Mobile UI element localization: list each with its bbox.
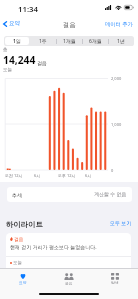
staticText: 오전 12시 — [5, 173, 23, 178]
staticText: 6개월 — [89, 38, 102, 45]
staticText: 6시 — [34, 173, 41, 178]
staticText: 걸음 — [14, 236, 24, 242]
staticText: 걸음 — [63, 21, 76, 29]
staticText: 요약 — [19, 280, 27, 285]
staticText: 오늘 — [13, 260, 22, 266]
staticText: 6시 — [85, 173, 92, 178]
button[interactable]: 요약 — [0, 269, 46, 291]
staticText: 데이터 추가 — [105, 20, 133, 27]
button[interactable]: 데이터 추가 — [100, 18, 138, 29]
staticText: 오후 12시 — [58, 173, 76, 178]
button[interactable]: 6개월 — [82, 36, 108, 46]
staticText: 14,244 — [3, 53, 36, 67]
staticText: 0 — [111, 168, 114, 173]
staticText: 계산할 수 없음 — [94, 191, 127, 198]
staticText: 공유 — [65, 281, 73, 286]
button[interactable]: 1개월 — [56, 36, 82, 46]
staticText: 추세 — [12, 192, 22, 198]
staticText: 현재 걷기 거리가 평소보다 늘었습니다. — [10, 244, 97, 251]
button[interactable]: 1주 — [30, 36, 56, 46]
button[interactable]: 탐색 — [92, 269, 138, 291]
staticText: 1개월 — [63, 38, 76, 45]
button[interactable]: 요약 — [0, 18, 24, 29]
staticText: 하이라이트 — [6, 220, 43, 229]
staticText: 걸음 — [37, 60, 47, 66]
staticText: 11:34 — [18, 4, 38, 15]
staticText: 모두 보기 — [110, 220, 132, 227]
staticText: 1,000 — [111, 122, 122, 127]
staticText: 요약 — [9, 20, 21, 27]
staticText: 1년 — [117, 38, 125, 45]
staticText: 탐색 — [111, 280, 119, 285]
button[interactable]: 모두 보기 — [108, 219, 134, 228]
button[interactable]: 추세 — [7, 187, 132, 202]
staticText: 2,000 — [111, 76, 122, 81]
staticText: 총 — [3, 47, 8, 53]
button[interactable]: 1년 — [108, 36, 134, 46]
staticText: 1주 — [39, 38, 47, 45]
button[interactable]: 공유 — [46, 269, 92, 291]
button[interactable]: 걸음 — [6, 233, 131, 273]
staticText: 1일 — [13, 38, 21, 45]
staticText: 오늘 — [3, 67, 13, 73]
button[interactable]: 1일 — [4, 36, 30, 46]
